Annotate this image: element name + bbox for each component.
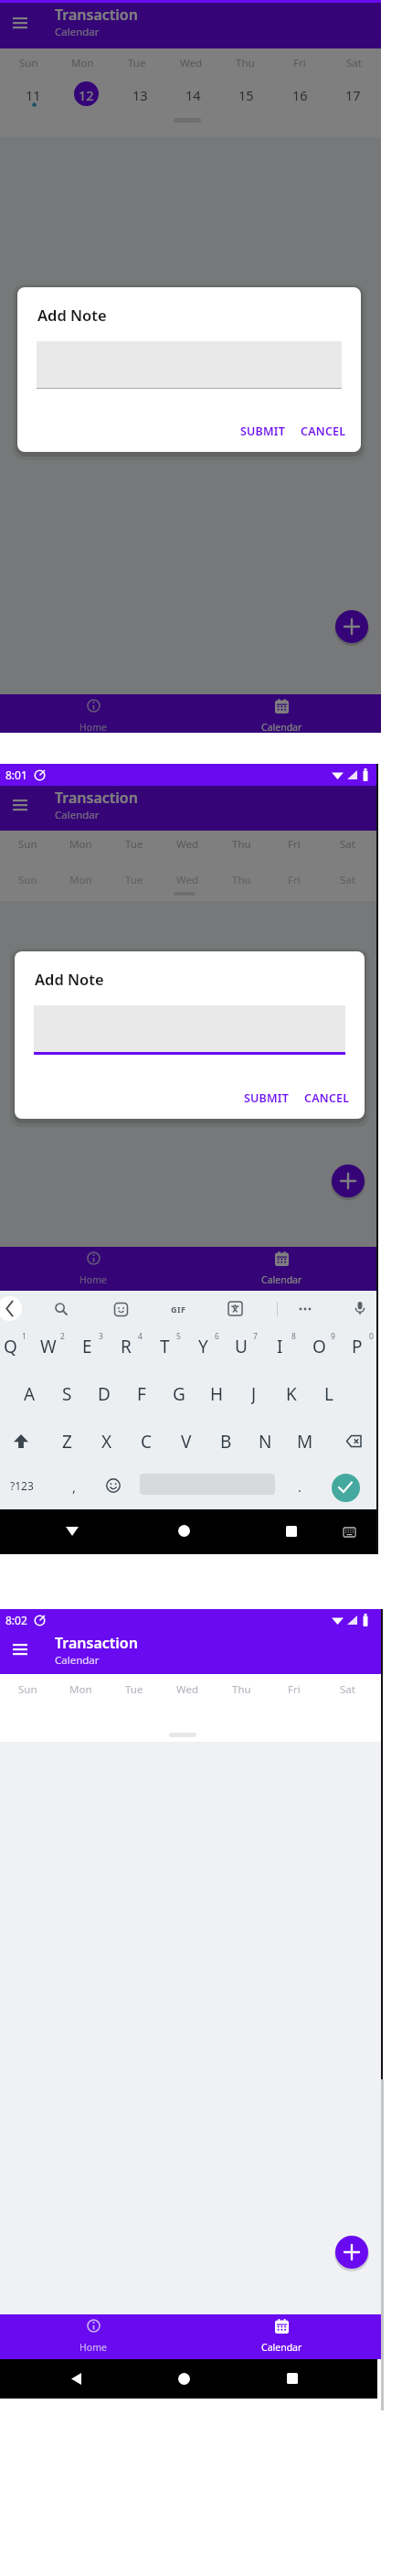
button[interactable]: E (72, 1335, 101, 1357)
staticText: 9 (331, 1331, 335, 1342)
button[interactable] (13, 1644, 27, 1655)
button[interactable] (46, 2314, 141, 2359)
button[interactable] (13, 17, 27, 28)
button[interactable] (286, 1526, 297, 1537)
button[interactable] (14, 1434, 28, 1448)
button[interactable]: V (172, 1430, 201, 1452)
staticText: Sat (340, 837, 355, 852)
staticText: R (121, 1335, 132, 1357)
button[interactable]: Q (0, 1335, 25, 1357)
button[interactable] (335, 2236, 368, 2269)
staticText: Transaction (55, 1633, 138, 1653)
button[interactable] (287, 2373, 298, 2384)
staticText: Y (198, 1335, 208, 1357)
staticText: Calendar (55, 808, 100, 821)
button[interactable] (332, 1474, 360, 1502)
staticText: Calendar (261, 2341, 302, 2352)
staticText: Wed (176, 873, 199, 887)
button[interactable] (178, 1525, 190, 1537)
staticText: Thu (232, 873, 251, 887)
button[interactable] (228, 1302, 242, 1315)
button[interactable]: G (164, 1382, 194, 1404)
button[interactable]: R (111, 1335, 141, 1357)
button[interactable]: L (314, 1382, 344, 1404)
button[interactable]: O (304, 1335, 333, 1357)
button[interactable]: X (92, 1430, 122, 1452)
staticText: Sun (18, 1682, 37, 1697)
staticText: Mon (69, 1682, 92, 1697)
staticText: 6 (215, 1331, 219, 1342)
button[interactable]: Y (188, 1335, 217, 1357)
button[interactable]: K (277, 1382, 306, 1404)
button[interactable]: CANCEL (301, 424, 346, 438)
button[interactable]: T (150, 1335, 179, 1357)
button[interactable] (346, 1435, 363, 1447)
button[interactable]: M (291, 1430, 320, 1452)
staticText: Mon (69, 837, 92, 852)
button[interactable] (37, 341, 342, 389)
button[interactable] (234, 1247, 329, 1291)
staticText: H (210, 1382, 224, 1404)
button[interactable] (70, 2373, 82, 2385)
staticText: 12 (79, 86, 94, 102)
button[interactable] (332, 1165, 365, 1197)
staticText: Calendar (55, 1653, 100, 1667)
button[interactable] (178, 2373, 190, 2385)
staticText: Transaction (55, 5, 138, 25)
button[interactable]: D (90, 1382, 119, 1404)
button[interactable]: J (239, 1382, 269, 1404)
button[interactable] (46, 1247, 141, 1291)
button[interactable] (234, 2314, 329, 2359)
button[interactable] (344, 1528, 355, 1537)
staticText: Wed (176, 1682, 199, 1697)
button[interactable]: I (265, 1335, 294, 1357)
button[interactable]: F (127, 1382, 156, 1404)
staticText: 8:02 (5, 1613, 27, 1627)
button[interactable]: A (15, 1382, 44, 1404)
button[interactable]: N (250, 1430, 280, 1452)
button[interactable]: Z (52, 1430, 81, 1452)
button[interactable] (66, 1526, 79, 1537)
button[interactable]: CANCEL (304, 1090, 350, 1105)
button[interactable] (13, 800, 27, 810)
staticText: Fri (288, 837, 301, 852)
staticText: E (82, 1335, 92, 1357)
staticText: CANCEL (301, 424, 346, 438)
button[interactable]: . (292, 1477, 307, 1494)
button[interactable]: P (343, 1335, 372, 1357)
staticText: , (72, 1477, 77, 1494)
button[interactable] (354, 1302, 366, 1316)
staticText: O (312, 1335, 326, 1357)
button[interactable] (0, 1296, 22, 1321)
button[interactable] (335, 610, 368, 643)
button[interactable]: , (67, 1477, 81, 1494)
button[interactable] (299, 1303, 312, 1315)
staticText: Home (79, 721, 107, 732)
button[interactable] (106, 1478, 121, 1493)
button[interactable]: W (34, 1335, 63, 1357)
button[interactable]: B (211, 1430, 240, 1452)
button[interactable]: GIF (165, 1303, 191, 1315)
button[interactable]: S (52, 1382, 81, 1404)
button[interactable] (234, 694, 329, 733)
button[interactable] (46, 694, 141, 733)
staticText: Wed (180, 56, 203, 70)
staticText: Sun (18, 873, 37, 887)
staticText: Calendar (55, 25, 100, 38)
button[interactable] (34, 1005, 345, 1053)
staticText: CANCEL (304, 1090, 350, 1105)
staticText: 11 (26, 86, 41, 102)
button[interactable]: C (132, 1430, 161, 1452)
staticText: 2 (60, 1331, 65, 1342)
button[interactable]: SUBMIT (240, 424, 286, 438)
button[interactable] (114, 1303, 128, 1316)
button[interactable]: ?123 (5, 1477, 38, 1494)
staticText: G (173, 1382, 185, 1404)
button[interactable] (55, 1303, 68, 1315)
staticText: Tue (125, 873, 143, 887)
button[interactable]: U (227, 1335, 256, 1357)
button[interactable]: H (202, 1382, 231, 1404)
button[interactable]: SUBMIT (244, 1090, 290, 1105)
staticText: 4 (138, 1331, 143, 1342)
